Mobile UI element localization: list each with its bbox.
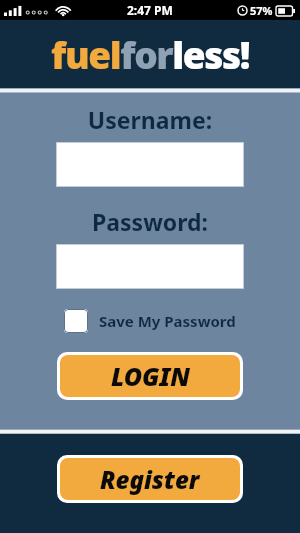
staticText: 57% bbox=[250, 3, 273, 18]
button[interactable]: Register bbox=[60, 458, 240, 500]
button[interactable]: LOGIN bbox=[60, 355, 240, 397]
staticText: Password: bbox=[0, 206, 300, 237]
staticText: LOGIN bbox=[111, 359, 190, 393]
staticText: Register bbox=[100, 463, 200, 496]
staticText: Save My Password bbox=[99, 311, 236, 331]
button[interactable]: Save My Password bbox=[64, 309, 280, 333]
staticText: Username: bbox=[0, 104, 300, 135]
staticText: 2:47 PM bbox=[127, 2, 173, 18]
staticText: fuelforless! bbox=[51, 29, 250, 79]
